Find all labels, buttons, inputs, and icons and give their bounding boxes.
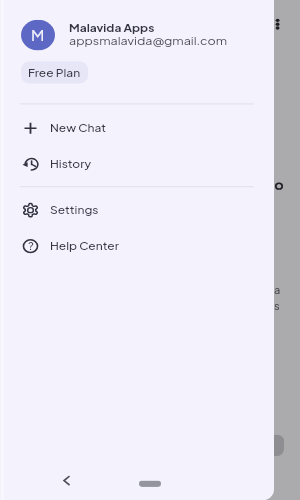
staticText: Malavida Apps [69,22,155,35]
button[interactable]: New Chat [0,110,274,146]
button[interactable]: ? [0,228,274,264]
button[interactable]: History [0,146,274,182]
staticText: History [50,157,92,171]
staticText: Free Plan [28,66,81,79]
staticText: appsmalavida@gmail.com [69,33,228,48]
staticText: s [274,300,280,312]
button[interactable]: Back [54,468,82,493]
button[interactable]: M [0,20,274,50]
button[interactable]: Free Plan [21,61,88,84]
staticText: M [31,26,45,44]
staticText: a [274,284,281,297]
staticText: Help Center [50,239,119,253]
staticText: New Chat [50,121,107,135]
staticText: ? [28,240,34,253]
button[interactable]: More options [275,16,285,32]
staticText: Settings [50,203,99,217]
button[interactable]: Settings [0,192,274,228]
